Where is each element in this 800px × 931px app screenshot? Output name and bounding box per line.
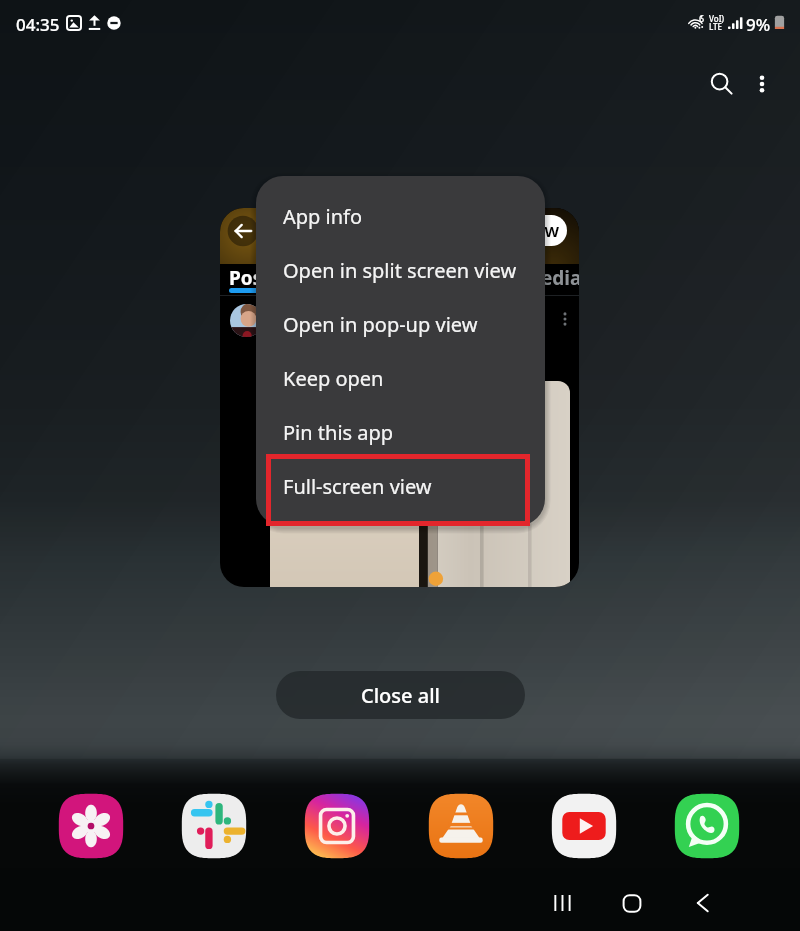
button[interactable]: Instagram <box>302 791 372 861</box>
staticText: 6 <box>699 12 705 24</box>
staticText: Open in split screen view <box>283 257 517 284</box>
staticText: Open in pop-up view <box>283 311 478 338</box>
staticText: Media <box>523 265 579 291</box>
staticText: NEW <box>524 221 560 241</box>
staticText: VoI) <box>709 13 724 24</box>
button[interactable]: YouTube <box>549 791 619 861</box>
staticText: App info <box>283 203 363 230</box>
button[interactable]: Slack <box>179 791 249 861</box>
staticText: 9% <box>746 13 771 36</box>
button[interactable]: Home <box>608 879 656 927</box>
staticText: Posts <box>229 265 280 291</box>
button[interactable]: WhatsApp <box>672 791 742 861</box>
button[interactable]: App info <box>256 189 545 243</box>
button[interactable]: VLC <box>426 791 496 861</box>
button[interactable]: Back <box>678 879 726 927</box>
staticText: Keep open <box>283 365 384 392</box>
button[interactable]: More options <box>741 63 783 105</box>
button[interactable]: NEW <box>220 208 579 587</box>
button[interactable]: Full-screen view <box>256 459 545 513</box>
button[interactable]: Close all <box>276 671 525 719</box>
staticText: LTE <box>709 21 723 32</box>
button[interactable]: Open in split screen view <box>256 243 545 297</box>
button[interactable]: Pin this app <box>256 405 545 459</box>
staticText: Full-screen view <box>283 473 432 500</box>
button[interactable]: Keep open <box>256 351 545 405</box>
staticText: 04:35 <box>16 13 60 36</box>
button[interactable]: Gallery <box>56 791 126 861</box>
button[interactable]: Recents <box>537 879 585 927</box>
staticText: Close all <box>361 682 440 709</box>
button[interactable]: Open in pop-up view <box>256 297 545 351</box>
staticText: Pin this app <box>283 419 394 446</box>
button[interactable]: Search <box>701 63 743 105</box>
